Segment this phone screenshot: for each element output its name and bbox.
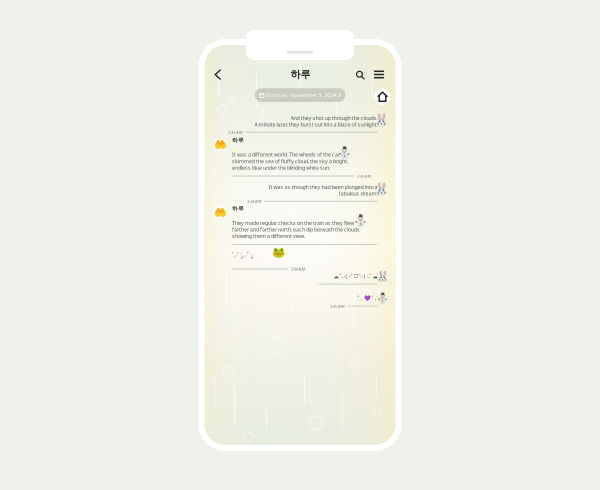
button[interactable]: Sunday, November 3, 2024 xyxy=(255,88,345,102)
staticText: A minute later, they burst out into a bl… xyxy=(254,121,377,128)
staticText: 하루 xyxy=(232,136,244,144)
staticText: 3:33 AM xyxy=(228,129,243,135)
staticText: ˙˚ ₊ 💜 ˚ ₊˙ xyxy=(356,294,377,302)
staticText: 3:33 AM xyxy=(356,173,371,179)
staticText: 🤲 xyxy=(214,207,226,219)
staticText: 🐰 xyxy=(374,113,389,127)
staticText: ☁︎ ˚₊· ( ˶ˆ ᗜ ˆ˵ ) ·₊˚ ☁︎ xyxy=(333,272,377,280)
staticText: It was a different world. The wheels of … xyxy=(232,151,340,158)
staticText: 하루 xyxy=(290,68,310,81)
staticText: 3:35 AM xyxy=(330,303,345,309)
staticText: ⛄ xyxy=(353,214,368,228)
staticText: 3:34 AM xyxy=(247,198,262,204)
staticText: · xyxy=(315,281,316,287)
button[interactable]: Search xyxy=(352,67,369,84)
staticText: ⛄ xyxy=(337,146,352,160)
staticText: They made regular checks on the train as… xyxy=(232,219,354,226)
staticText: farther and farther north, each dip bene… xyxy=(232,226,360,233)
staticText: And they shot up through the clouds. xyxy=(290,114,377,121)
staticText: fabulous dream. xyxy=(338,190,377,197)
staticText: It was as though they had been plunged i… xyxy=(268,183,377,191)
staticText: 🐸 xyxy=(272,246,285,259)
staticText: 🤲 xyxy=(214,139,226,150)
staticText: ⛄ xyxy=(376,292,389,305)
button[interactable]: Back xyxy=(210,65,226,84)
button[interactable]: Menu xyxy=(370,66,388,82)
staticText: skimmed the sea of fluffy cloud, the sky… xyxy=(232,157,348,165)
staticText: 🐰 xyxy=(376,270,389,283)
staticText: 🐰 xyxy=(374,182,389,196)
staticText: 하루 xyxy=(232,205,244,212)
staticText: showing them a different view. xyxy=(232,232,305,240)
staticText: ˚₊·˚ ༘ ₊·˚ ༘ xyxy=(232,249,253,264)
staticText: 3:34 AM xyxy=(290,266,305,272)
staticText: Sunday, November 3, 2024 xyxy=(266,91,336,99)
button[interactable]: Home xyxy=(374,88,391,105)
staticText: endless blue under the blinding white su… xyxy=(232,164,330,171)
